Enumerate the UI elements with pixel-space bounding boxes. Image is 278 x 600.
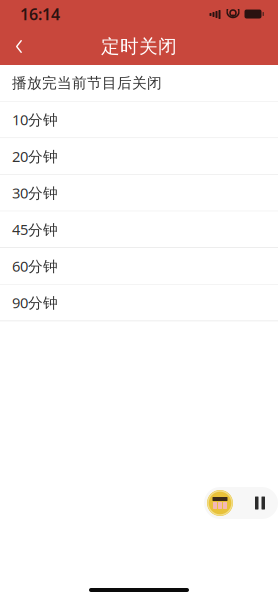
button[interactable]: 30分钟 [0, 175, 278, 211]
staticText: 播放完当前节目后关闭 [12, 74, 162, 92]
button[interactable]: 60分钟 [0, 248, 278, 285]
button[interactable]: 90分钟 [0, 285, 278, 321]
button[interactable]: 20分钟 [0, 138, 278, 175]
staticText: 30分钟 [12, 183, 58, 203]
staticText: 45分钟 [12, 220, 58, 239]
staticText: 16:14 [20, 3, 60, 25]
button[interactable]: 播放完当前节目后关闭 [0, 65, 278, 102]
staticText: 10分钟 [12, 110, 58, 129]
staticText: 90分钟 [12, 293, 58, 312]
button[interactable]: 暂停播放 [204, 487, 278, 519]
button[interactable]: 10分钟 [0, 102, 278, 138]
staticText: 20分钟 [12, 146, 58, 166]
staticText: 60分钟 [12, 256, 58, 276]
button[interactable]: 45分钟 [0, 211, 278, 248]
staticText: 定时关闭 [101, 35, 177, 58]
button[interactable]: 返回 [0, 28, 38, 65]
